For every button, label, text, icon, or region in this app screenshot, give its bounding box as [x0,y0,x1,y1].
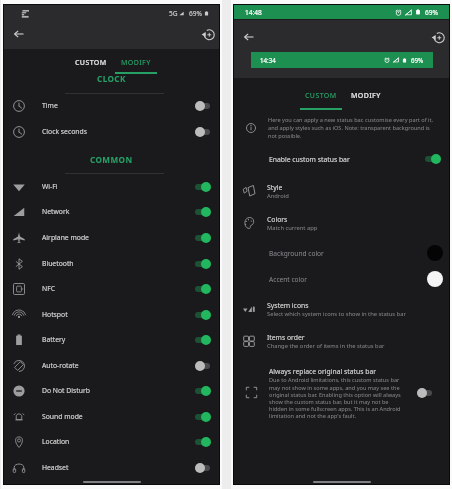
staticText: Do Not Disturb [42,386,90,395]
button[interactable]: Network [4,199,219,224]
button[interactable]: Always replace original status bar [246,387,257,398]
staticText: Android [267,192,289,200]
button[interactable]: Auto-rotate [4,353,219,378]
staticText: 5G [169,9,178,18]
staticText: Select which system icons to show in the… [267,310,406,318]
button[interactable]: NFC [4,276,219,301]
staticText: MODIFY [351,91,381,101]
staticText: Accent color [269,275,307,284]
button[interactable]: Enable custom status bar [234,148,449,170]
button[interactable]: Headset [4,455,219,480]
staticText: Style [267,183,283,192]
staticText: Due to Android limitations, this custom … [269,376,403,419]
staticText: 69% [425,8,439,17]
staticText: 14:48 [245,8,262,17]
button[interactable]: MODIFY [344,88,388,104]
staticText: Change the order of items in the status … [267,342,385,350]
staticText: Network [42,207,70,216]
button[interactable]: Back [239,27,259,47]
button[interactable]: Back [9,24,29,44]
staticText: Headset [42,463,69,472]
staticText: CUSTOM [305,91,337,101]
staticText: Wi-Fi [42,182,58,191]
staticText: Colors [267,215,288,224]
button[interactable]: MODIFY [114,55,158,71]
staticText: Here you can apply a new status bar, cus… [268,116,440,140]
button[interactable]: Time [4,93,219,118]
button[interactable]: Background color [234,241,449,265]
staticText: NFC [42,284,55,293]
staticText: Airplane mode [42,233,89,242]
button[interactable]: Always replace toggle [417,388,433,398]
staticText: Time [42,101,58,110]
staticText: Battery [42,335,66,344]
button[interactable]: Style [234,177,449,205]
staticText: Hotspot [42,310,68,319]
button[interactable]: Bluetooth [4,251,219,276]
button[interactable]: Items order [234,327,449,355]
button[interactable]: CUSTOM [299,88,343,104]
staticText: Match current app [267,224,318,232]
staticText: 14:34 [260,56,276,64]
staticText: CUSTOM [75,58,107,68]
staticText: 69% [189,9,203,18]
button[interactable]: Hotspot [4,302,219,327]
button[interactable]: Colors [234,209,449,237]
button[interactable]: Restore defaults [428,27,448,47]
button[interactable]: Battery [4,327,219,352]
button[interactable]: Do Not Disturb [4,378,219,403]
staticText: Location [42,437,70,446]
staticText: Background color [269,249,324,258]
staticText: System icons [267,301,309,310]
staticText: Sound mode [42,412,83,421]
staticText: 69% [411,56,424,64]
button[interactable]: Location [4,429,219,454]
staticText: Auto-rotate [42,361,79,370]
staticText: Always replace original status bar [269,367,376,376]
staticText: Clock seconds [42,127,87,136]
staticText: Enable custom status bar [269,155,350,164]
staticText: MODIFY [121,58,151,68]
button[interactable]: CUSTOM [69,55,113,71]
button[interactable]: Accent color [234,267,449,291]
staticText: Bluetooth [42,259,74,268]
button[interactable]: Sound mode [4,404,219,429]
staticText: CLOCK [97,73,126,84]
staticText: Items order [267,333,305,342]
button[interactable]: Wi-Fi [4,174,219,199]
button[interactable]: Restore defaults [198,24,218,44]
button[interactable]: System icons [234,295,449,323]
button[interactable]: Clock seconds [4,119,219,144]
staticText: COMMON [90,154,133,165]
button[interactable]: Airplane mode [4,225,219,250]
